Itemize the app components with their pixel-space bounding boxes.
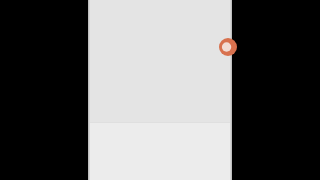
- button[interactable]: Compose: [219, 38, 237, 56]
